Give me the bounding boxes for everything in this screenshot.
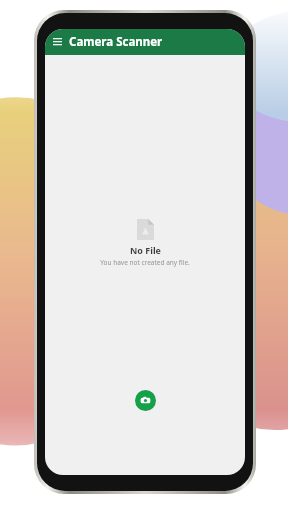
button[interactable]: Scan with camera bbox=[135, 390, 156, 411]
staticText: Camera Scanner bbox=[69, 34, 163, 50]
staticText: No File bbox=[130, 244, 161, 256]
button[interactable]: Open navigation menu bbox=[49, 34, 65, 50]
staticText: You have not created any file. bbox=[100, 258, 190, 267]
button[interactable]: Open navigation menu bbox=[45, 29, 245, 55]
